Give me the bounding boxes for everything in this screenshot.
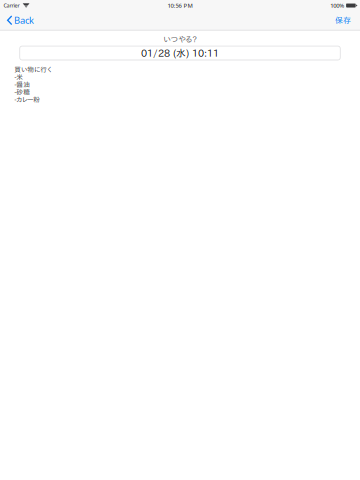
button[interactable]: Back — [0, 10, 40, 30]
staticText: -米 — [14, 74, 23, 80]
staticText: -カレー粉 — [14, 96, 40, 103]
staticText: Back — [14, 14, 34, 27]
staticText: Carrier — [3, 2, 19, 9]
button[interactable]: 保存 — [327, 10, 360, 30]
staticText: 100% — [330, 1, 344, 9]
staticText: 保存 — [335, 16, 351, 24]
staticText: 01/28 (水) 10:11 — [141, 48, 219, 58]
staticText: -砂糖 — [14, 89, 30, 95]
staticText: いつやる? — [163, 35, 196, 43]
staticText: 10:56 PM — [167, 1, 192, 9]
staticText: 買い物に行く — [14, 66, 51, 73]
staticText: -醤油 — [14, 81, 30, 88]
